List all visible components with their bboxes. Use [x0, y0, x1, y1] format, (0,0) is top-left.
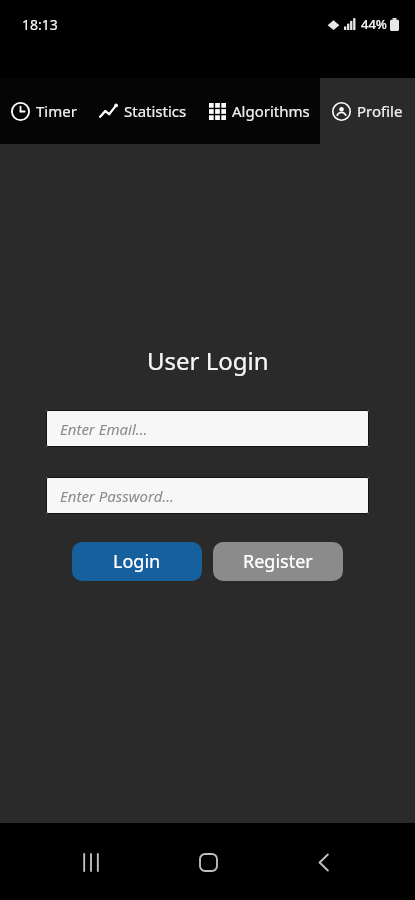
button[interactable]: Profile — [320, 78, 415, 144]
button[interactable]: Login — [72, 542, 202, 581]
staticText: User Login — [147, 344, 269, 377]
staticText: Enter Email... — [60, 419, 148, 439]
staticText: Enter Password... — [60, 486, 174, 506]
staticText: Register — [243, 549, 313, 574]
staticText: Login — [113, 549, 161, 574]
staticText: 18:13 — [22, 15, 58, 34]
staticText: Statistics — [124, 101, 187, 121]
button[interactable]: Home — [182, 836, 234, 888]
button[interactable]: Register — [213, 542, 343, 581]
staticText: 44% — [361, 15, 387, 33]
button[interactable]: Statistics — [87, 78, 199, 144]
staticText: Algorithms — [232, 101, 310, 121]
staticText: Timer — [36, 101, 77, 121]
button[interactable]: Algorithms — [199, 78, 320, 144]
button[interactable]: Enter Password... — [46, 477, 369, 514]
staticText: Profile — [357, 101, 403, 121]
button[interactable]: Back — [298, 836, 350, 888]
button[interactable]: Enter Email... — [46, 410, 369, 447]
button[interactable]: Timer — [0, 78, 87, 144]
button[interactable]: Recent apps — [65, 836, 117, 888]
